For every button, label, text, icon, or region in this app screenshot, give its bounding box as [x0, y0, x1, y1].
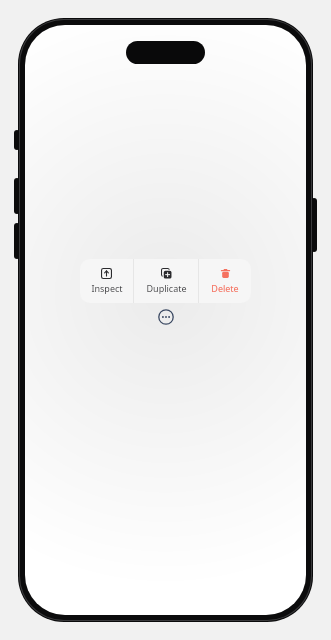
button[interactable]: Duplicate — [134, 259, 198, 303]
staticText: Inspect — [91, 282, 123, 294]
button[interactable]: More options — [158, 309, 174, 325]
button[interactable]: Delete — [199, 259, 251, 303]
staticText: Duplicate — [146, 282, 187, 294]
button[interactable]: Inspect — [80, 259, 133, 303]
staticText: Delete — [211, 282, 239, 294]
